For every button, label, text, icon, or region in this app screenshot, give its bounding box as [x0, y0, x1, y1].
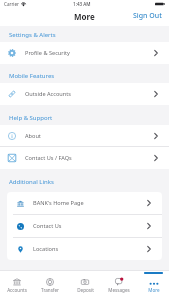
staticText: Contact Us: [33, 222, 62, 230]
staticText: BANK's Home Page: [33, 199, 84, 207]
other: Messages: [115, 278, 123, 286]
staticText: Mobile Features: [9, 72, 55, 80]
staticText: More: [74, 11, 95, 22]
staticText: About: [25, 132, 41, 140]
other: Accounts: [13, 278, 21, 286]
staticText: More: [148, 287, 160, 293]
button[interactable]: Deposit: [67, 271, 101, 300]
button[interactable]: BANK's Home Page: [7, 192, 162, 215]
button[interactable]: More: [135, 271, 169, 300]
other: More: [150, 278, 158, 286]
other: Deposit: [81, 278, 89, 286]
staticText: Carrier: [4, 1, 19, 7]
button[interactable]: Outside Accounts: [0, 83, 169, 105]
staticText: Transfer: [41, 287, 59, 293]
button[interactable]: Locations: [7, 238, 162, 260]
button[interactable]: Contact Us: [7, 215, 162, 238]
staticText: Messages: [108, 287, 130, 293]
staticText: Contact Us / FAQs: [25, 154, 72, 162]
staticText: Outside Accounts: [25, 90, 71, 98]
button[interactable]: About: [0, 125, 169, 147]
staticText: Additional Links: [9, 178, 54, 186]
other: Transfer: [46, 278, 54, 286]
button[interactable]: Accounts: [0, 271, 33, 300]
staticText: Locations: [33, 245, 59, 253]
button[interactable]: Profile & Security: [0, 42, 169, 64]
staticText: Sign Out: [133, 11, 162, 21]
staticText: Settings & Alerts: [9, 31, 56, 39]
staticText: Deposit: [77, 287, 94, 293]
staticText: Profile & Security: [25, 49, 70, 57]
button[interactable]: Transfer: [33, 271, 67, 300]
staticText: 1:43 AM: [73, 1, 91, 7]
staticText: Help & Support: [9, 114, 53, 122]
button[interactable]: Messages: [101, 271, 135, 300]
button[interactable]: Contact Us / FAQs: [0, 147, 169, 169]
button[interactable]: Sign Out: [127, 11, 169, 24]
staticText: Accounts: [7, 287, 27, 293]
